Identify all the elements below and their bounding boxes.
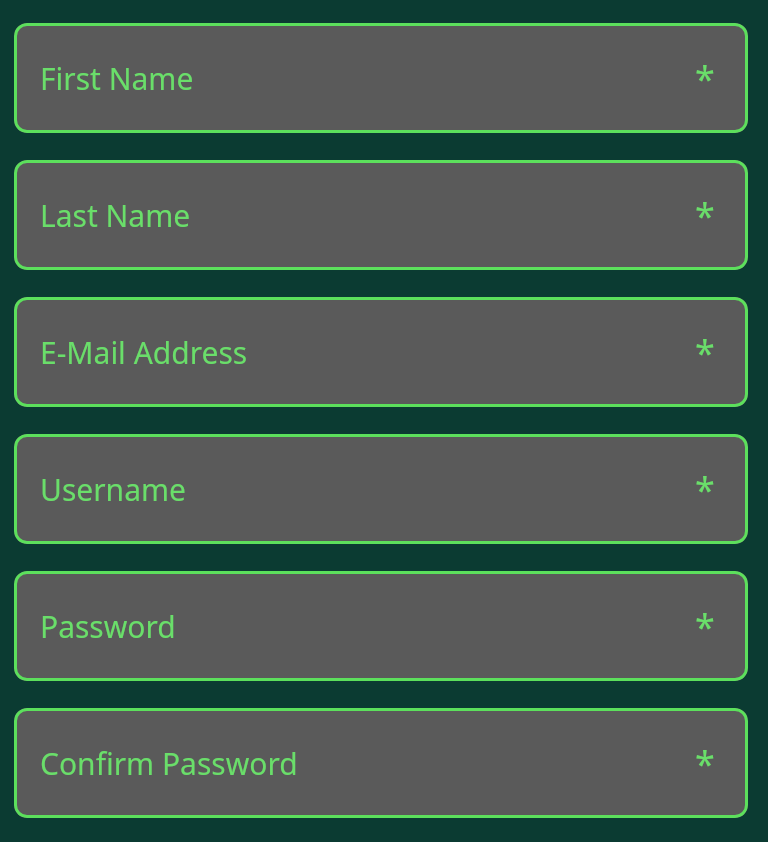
staticText: *	[695, 191, 715, 240]
button[interactable]: Last Name	[14, 160, 748, 270]
staticText: First Name	[40, 58, 194, 99]
button[interactable]: E-Mail Address	[14, 297, 748, 407]
staticText: Last Name	[40, 195, 191, 236]
button[interactable]: Username	[14, 434, 748, 544]
staticText: *	[695, 739, 715, 788]
staticText: *	[695, 465, 715, 514]
button[interactable]: First Name	[14, 23, 748, 133]
staticText: Username	[40, 469, 186, 510]
staticText: *	[695, 328, 715, 377]
staticText: *	[695, 602, 715, 651]
staticText: Confirm Password	[40, 743, 298, 784]
button[interactable]: Confirm Password	[14, 708, 748, 818]
staticText: *	[695, 54, 715, 103]
staticText: E-Mail Address	[40, 332, 248, 373]
button[interactable]: Password	[14, 571, 748, 681]
staticText: Password	[40, 606, 176, 647]
